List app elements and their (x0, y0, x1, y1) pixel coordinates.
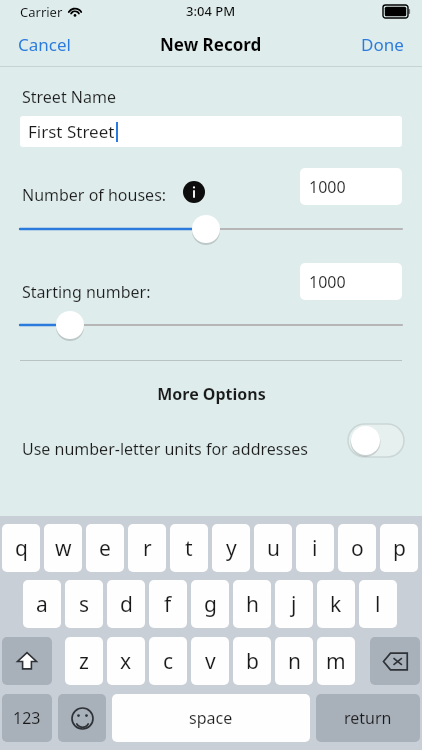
button[interactable]: Shift (2, 637, 52, 685)
button[interactable]: d (107, 580, 145, 628)
button[interactable]: space (112, 694, 310, 742)
button[interactable]: n (275, 637, 313, 685)
staticText: 123 (13, 707, 41, 729)
staticText: return (344, 707, 392, 729)
button[interactable]: x (107, 637, 145, 685)
staticText: Carrier (20, 3, 63, 21)
button[interactable]: Information (183, 181, 205, 203)
button[interactable]: u (254, 524, 292, 572)
staticText: 1000 (309, 176, 346, 198)
staticText: Cancel (18, 33, 71, 56)
staticText: c (163, 647, 174, 676)
staticText: l (375, 590, 381, 619)
button[interactable]: return (316, 694, 420, 742)
button[interactable]: 1000 (300, 168, 402, 205)
button[interactable]: m (317, 637, 355, 685)
staticText: y (226, 534, 237, 563)
button[interactable]: r (128, 524, 166, 572)
staticText: i (312, 534, 318, 563)
staticText: Number of houses: (22, 184, 167, 206)
button[interactable]: First Street (20, 116, 402, 147)
staticText: 1000 (309, 271, 346, 293)
staticText: h (246, 590, 259, 619)
staticText: m (326, 647, 346, 676)
button[interactable]: w (44, 524, 82, 572)
button[interactable]: Cancel (8, 27, 81, 62)
button[interactable]: v (191, 637, 229, 685)
button[interactable]: z (65, 637, 103, 685)
button[interactable]: Slider (0, 212, 422, 246)
staticText: Use number-letter units for addresses (22, 438, 308, 460)
staticText: First Street (28, 120, 115, 143)
staticText: f (164, 590, 172, 619)
staticText: Starting number: (22, 281, 151, 303)
staticText: p (393, 534, 406, 563)
button[interactable]: Slider (0, 308, 422, 342)
staticText: w (55, 534, 72, 563)
button[interactable]: k (317, 580, 355, 628)
staticText: a (36, 590, 48, 619)
staticText: s (79, 590, 90, 619)
button[interactable]: Use number-letter units for addresses (348, 424, 404, 457)
button[interactable]: Done (351, 27, 414, 62)
button[interactable]: h (233, 580, 271, 628)
staticText: t (185, 534, 193, 563)
staticText: v (205, 647, 216, 676)
staticText: b (246, 647, 259, 676)
button[interactable]: a (23, 580, 61, 628)
button[interactable]: f (149, 580, 187, 628)
button[interactable]: 1000 (300, 263, 402, 300)
staticText: q (15, 534, 28, 563)
button[interactable]: e (86, 524, 124, 572)
button[interactable]: t (170, 524, 208, 572)
staticText: Street Name (22, 86, 116, 108)
staticText: x (120, 647, 132, 676)
staticText: z (79, 647, 89, 676)
staticText: d (120, 590, 133, 619)
button[interactable]: Backspace (370, 637, 420, 685)
button[interactable]: q (2, 524, 40, 572)
staticText: New Record (160, 33, 262, 56)
staticText: More Options (157, 383, 266, 405)
staticText: Done (361, 33, 404, 56)
button[interactable]: g (191, 580, 229, 628)
staticText: space (189, 707, 233, 729)
button[interactable]: b (233, 637, 271, 685)
staticText: n (288, 647, 301, 676)
staticText: j (291, 590, 297, 619)
staticText: k (330, 590, 342, 619)
staticText: e (99, 534, 111, 563)
button[interactable]: o (338, 524, 376, 572)
button[interactable]: 123 (2, 694, 52, 742)
button[interactable]: Emoji (58, 694, 106, 742)
staticText: 3:04 PM (186, 2, 236, 20)
button[interactable]: s (65, 580, 103, 628)
button[interactable]: l (359, 580, 397, 628)
button[interactable]: c (149, 637, 187, 685)
staticText: r (143, 534, 152, 563)
button[interactable]: j (275, 580, 313, 628)
button[interactable]: y (212, 524, 250, 572)
staticText: u (267, 534, 280, 563)
staticText: o (351, 534, 364, 563)
button[interactable]: p (380, 524, 418, 572)
staticText: g (204, 590, 217, 619)
button[interactable]: i (296, 524, 334, 572)
